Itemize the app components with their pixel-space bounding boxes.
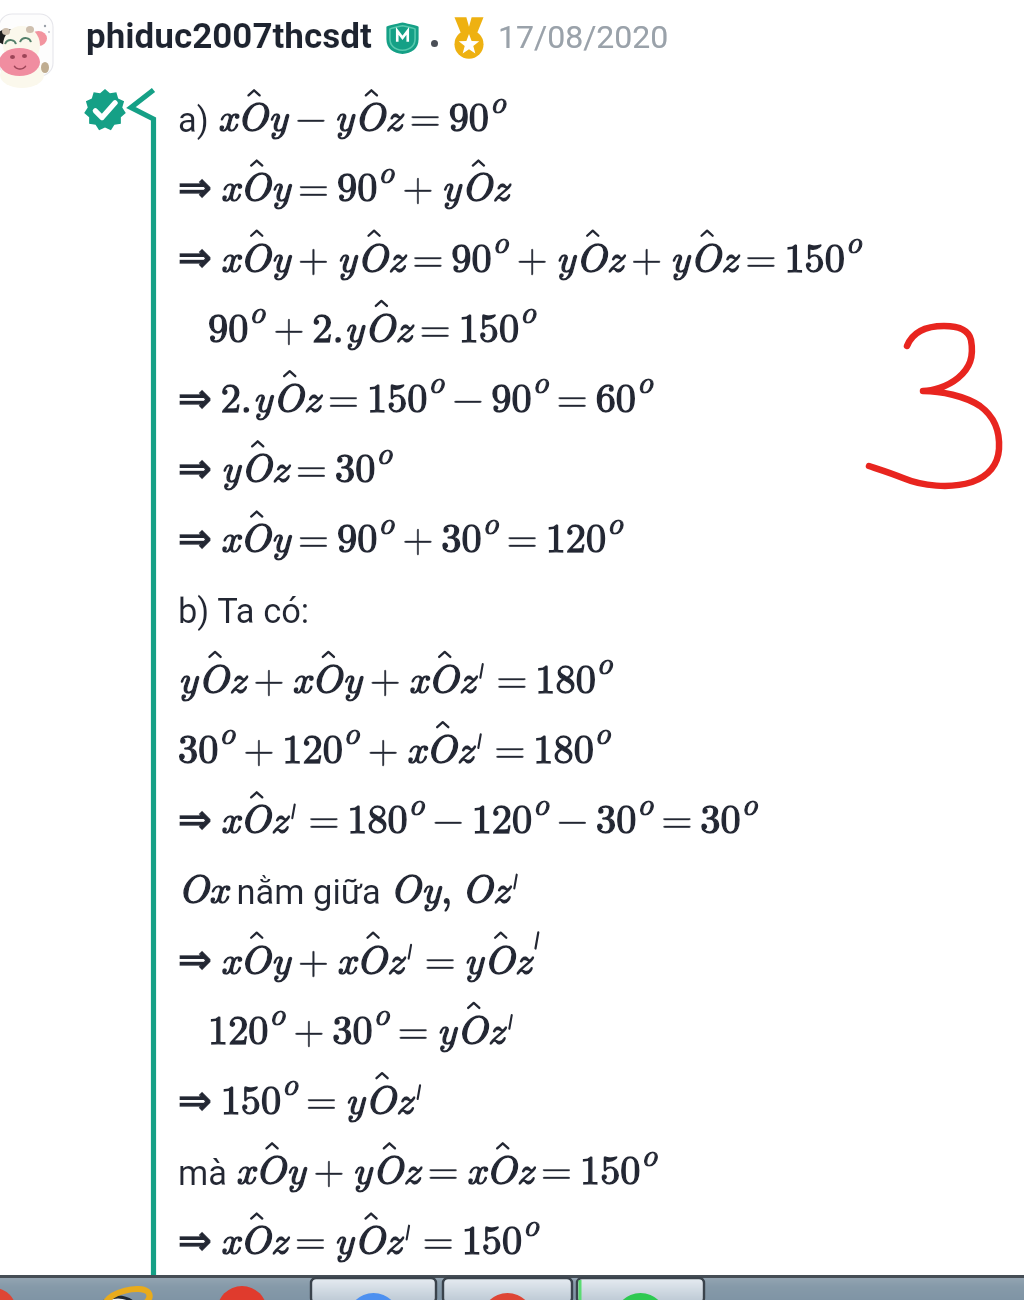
button[interactable]: Top answerer medal — [447, 15, 491, 59]
button[interactable]: phiduc2007thcsdt — [0, 0, 1024, 74]
staticText: phiduc2007thcsdt — [86, 16, 372, 57]
button[interactable]: Moderator badge — [385, 20, 420, 55]
staticText: 17/08/2020 — [498, 18, 669, 56]
button[interactable] — [0, 7, 66, 76]
button[interactable] — [0, 1275, 1024, 1300]
button[interactable]: Verified answer — [84, 89, 126, 131]
